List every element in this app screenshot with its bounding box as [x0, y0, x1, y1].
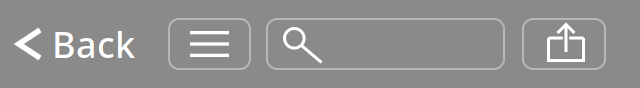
button[interactable]: Search	[267, 19, 504, 69]
button[interactable]: Menu	[169, 19, 250, 69]
button[interactable]: Share	[523, 19, 605, 69]
button[interactable]: Back	[0, 0, 145, 88]
staticText: Back	[52, 20, 135, 68]
